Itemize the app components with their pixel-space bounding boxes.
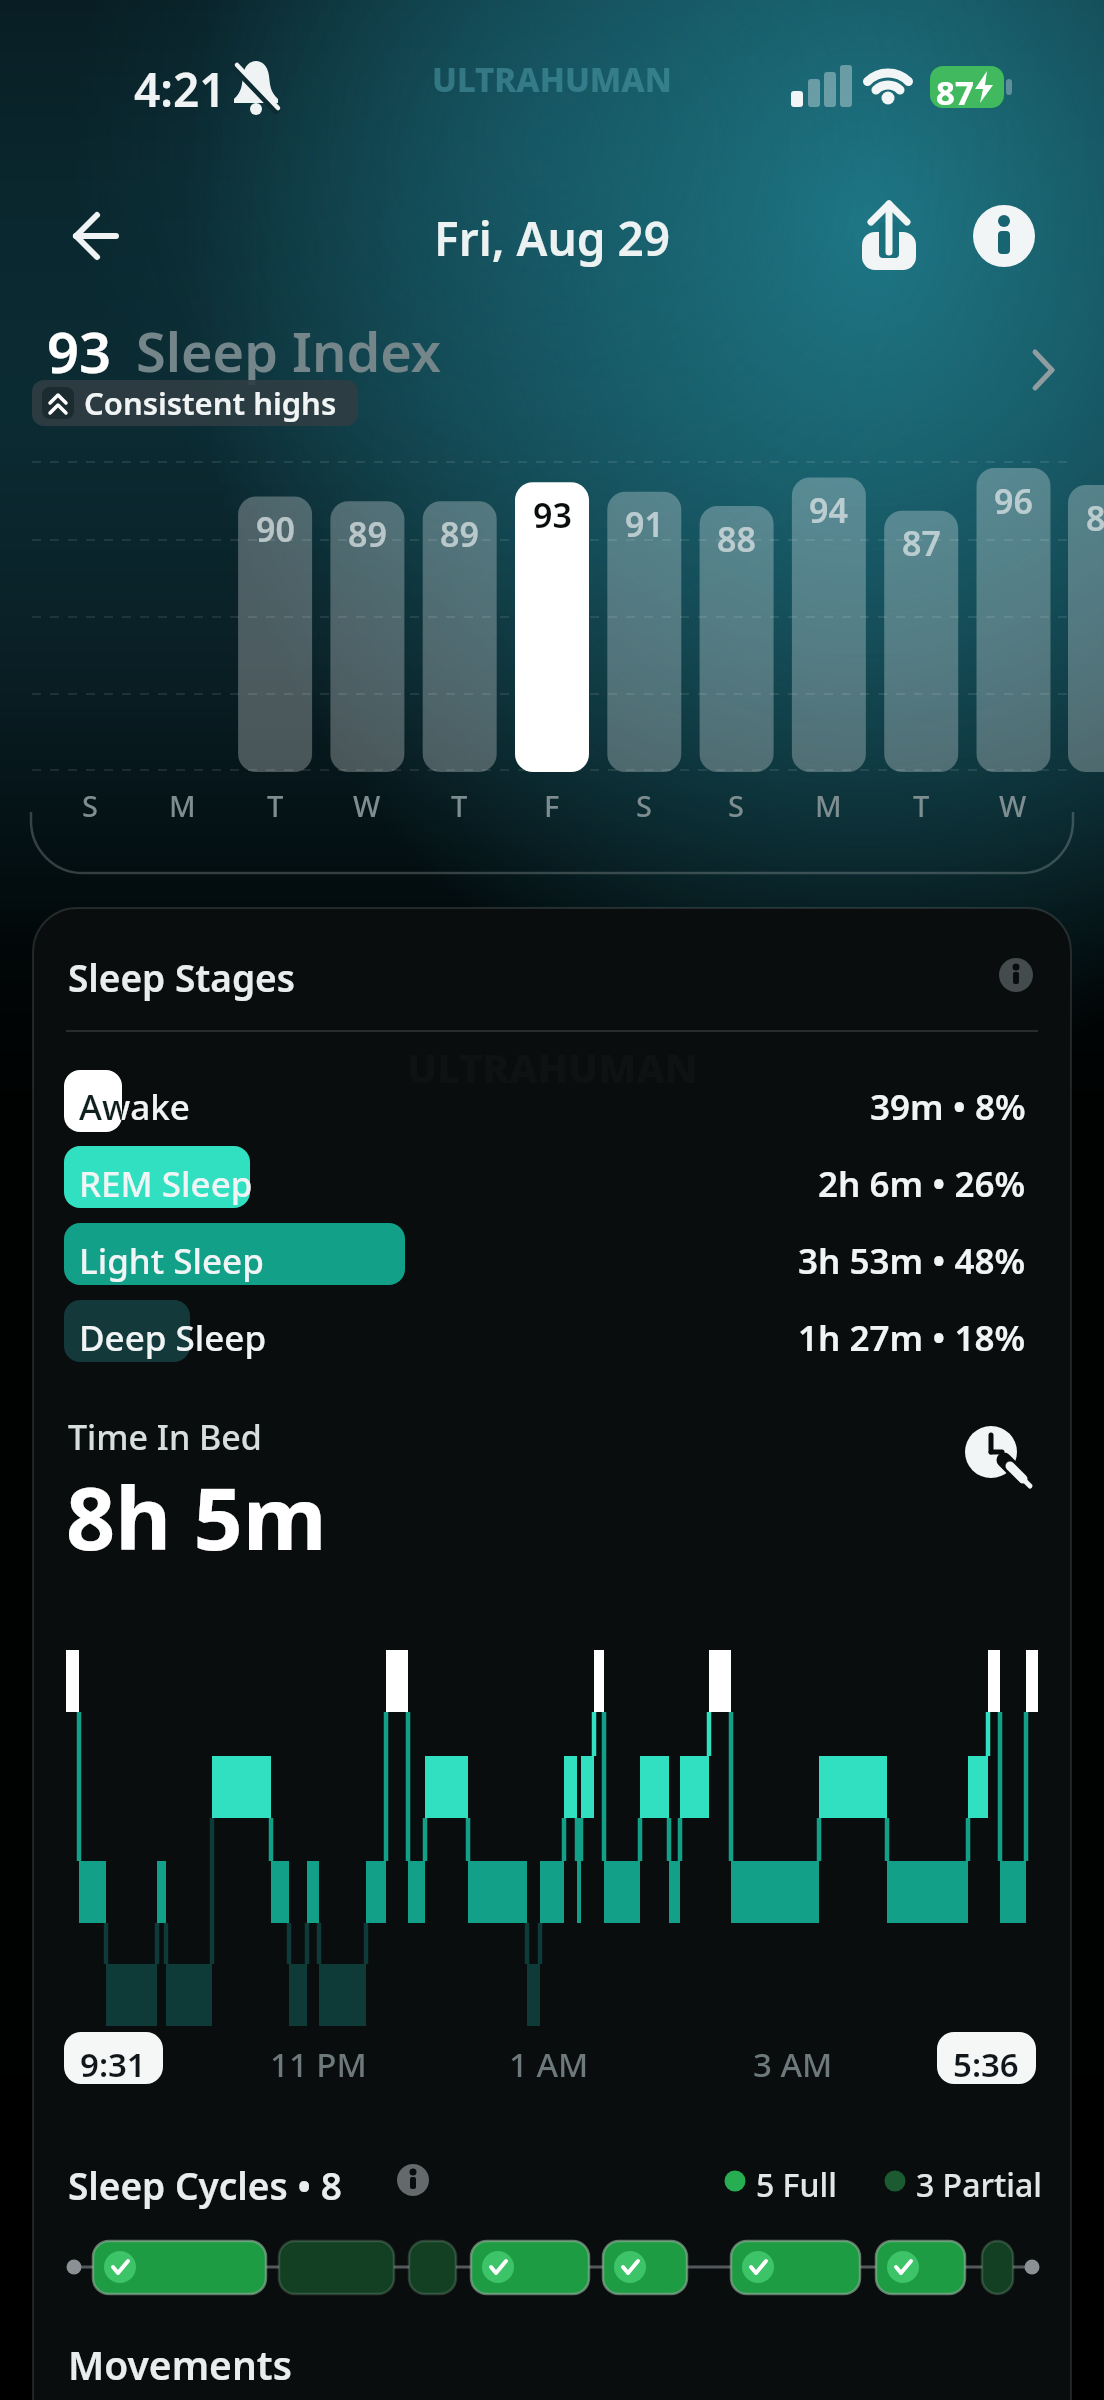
staticText: M (169, 786, 196, 825)
staticText: 88 (717, 516, 756, 562)
button[interactable] (994, 953, 1038, 997)
button[interactable] (966, 198, 1042, 274)
staticText: Awake (79, 1083, 190, 1131)
button[interactable] (60, 200, 132, 272)
button[interactable] (64, 2032, 163, 2084)
staticText: T (913, 786, 930, 825)
staticText: 11 PM (270, 2042, 367, 2087)
staticText: 93 (47, 313, 112, 389)
button[interactable] (53, 460, 128, 812)
staticText: S (728, 786, 744, 825)
staticText: Fri, Aug 29 (434, 207, 671, 270)
staticText: Light Sleep (79, 1237, 264, 1285)
staticText: 3 AM (753, 2042, 833, 2087)
staticText: 87 (902, 520, 941, 566)
button[interactable] (884, 460, 959, 812)
staticText: Movements (68, 2338, 292, 2391)
button[interactable] (607, 460, 682, 812)
staticText: F (544, 786, 560, 825)
button[interactable] (791, 460, 866, 812)
staticText: 3 Partial (916, 2163, 1042, 2207)
button[interactable] (391, 2158, 435, 2202)
button[interactable] (238, 460, 313, 812)
staticText: W (353, 786, 381, 825)
button[interactable] (699, 460, 774, 812)
staticText: ULTRAHUMAN (432, 57, 672, 102)
staticText: M (815, 786, 842, 825)
staticText: 89 (1086, 495, 1104, 541)
button[interactable] (30, 305, 1074, 375)
staticText: 1 AM (509, 2042, 589, 2087)
button[interactable] (964, 1424, 1040, 1500)
button[interactable] (515, 460, 590, 812)
staticText: 5:36 (953, 2042, 1019, 2087)
staticText: 9:31 (80, 2042, 146, 2087)
staticText: Awake (79, 1083, 122, 1132)
staticText: T (451, 786, 468, 825)
button[interactable]: Consistent highs (32, 380, 358, 426)
staticText: 87 (936, 70, 974, 115)
staticText: 39m • 8% (870, 1083, 1026, 1131)
staticText: W (999, 786, 1027, 825)
button[interactable] (422, 460, 497, 812)
staticText: 96 (994, 478, 1033, 524)
staticText: 4:21 (134, 58, 226, 121)
button[interactable] (937, 2032, 1036, 2084)
staticText: 8h 5m (66, 1458, 327, 1575)
staticText: 93 (533, 492, 572, 538)
staticText: REM Sleep (79, 1160, 253, 1208)
staticText: S (82, 786, 98, 825)
staticText: 89 (348, 511, 387, 557)
staticText: 2h 6m • 26% (818, 1160, 1026, 1208)
staticText: 90 (256, 506, 295, 552)
staticText: 91 (625, 501, 664, 547)
staticText: Sleep Index (136, 314, 441, 388)
staticText: 89 (440, 511, 479, 557)
staticText: T (267, 786, 284, 825)
staticText: 5 Full (756, 2163, 837, 2207)
staticText: 3h 53m • 48% (798, 1237, 1026, 1285)
staticText: Time In Bed (68, 1414, 262, 1460)
staticText: 1h 27m • 18% (798, 1314, 1026, 1362)
staticText: S (636, 786, 652, 825)
staticText: Consistent highs (84, 382, 337, 424)
staticText: Deep Sleep (79, 1314, 267, 1362)
button[interactable] (145, 460, 220, 812)
button[interactable] (330, 460, 405, 812)
button[interactable] (976, 460, 1051, 812)
staticText: 94 (809, 487, 848, 533)
staticText: Sleep Cycles • 8 (68, 2160, 343, 2210)
staticText: Sleep Stages (68, 952, 295, 1002)
button[interactable] (850, 196, 930, 276)
